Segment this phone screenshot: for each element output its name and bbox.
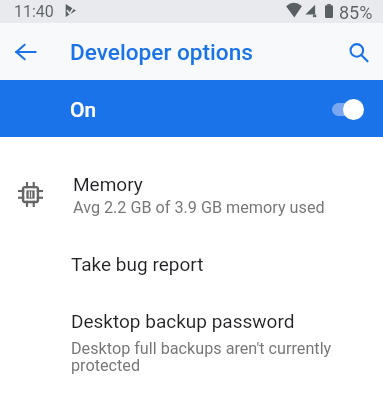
staticText: 85% <box>339 2 373 23</box>
staticText: Desktop full backups aren't currently pr… <box>71 339 343 375</box>
button[interactable]: Take bug report <box>0 232 383 296</box>
button[interactable]: Desktop backup password <box>0 296 383 389</box>
button[interactable]: Back <box>2 28 50 76</box>
button[interactable]: Memory <box>0 157 383 232</box>
staticText: Desktop backup password <box>71 310 295 332</box>
staticText: Avg 2.2 GB of 3.9 GB memory used <box>73 198 325 217</box>
staticText: Memory <box>73 173 143 195</box>
button[interactable]: Search <box>334 28 382 76</box>
staticText: On <box>70 98 97 123</box>
staticText: Take bug report <box>71 253 204 275</box>
staticText: 11:40 <box>14 2 54 21</box>
staticText: Developer options <box>70 39 253 65</box>
button[interactable]: On <box>0 80 383 137</box>
